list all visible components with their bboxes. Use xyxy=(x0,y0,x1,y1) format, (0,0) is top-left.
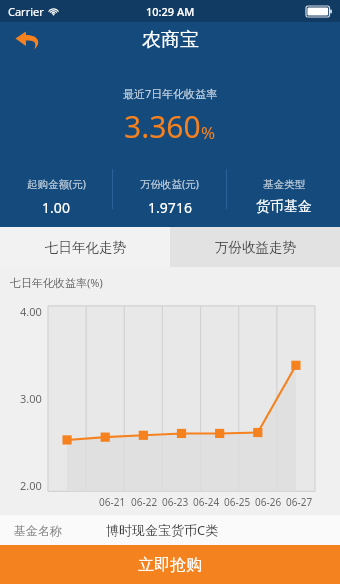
staticText: 七日年化走势 xyxy=(45,239,126,256)
staticText: 06-23 xyxy=(162,495,189,509)
button[interactable]: 万份收益走势 xyxy=(170,227,340,267)
staticText: 万份收益(元) xyxy=(140,177,199,191)
staticText: 最近7日年化收益率 xyxy=(123,86,218,101)
button[interactable]: 立即抢购 xyxy=(0,545,340,584)
staticText: 七日年化收益率(%) xyxy=(10,275,103,290)
staticText: 博时现金宝货币C类 xyxy=(106,521,219,539)
button[interactable]: Back xyxy=(8,24,48,56)
staticText: 06-27 xyxy=(286,495,313,509)
staticText: 06-26 xyxy=(255,495,282,509)
staticText: 1.00 xyxy=(42,198,70,217)
button[interactable]: 七日年化走势 xyxy=(0,227,170,267)
staticText: 3.00 xyxy=(20,391,42,406)
staticText: 06-25 xyxy=(224,495,251,509)
staticText: Carrier xyxy=(8,4,44,19)
staticText: 3.360 xyxy=(124,106,201,147)
staticText: 06-24 xyxy=(193,495,220,509)
staticText: 货币基金 xyxy=(256,198,312,216)
staticText: 10:29 AM xyxy=(146,4,195,19)
staticText: 基金名称 xyxy=(14,523,62,538)
staticText: 立即抢购 xyxy=(138,555,202,575)
staticText: 06-22 xyxy=(131,495,158,509)
staticText: 2.00 xyxy=(20,478,42,493)
staticText: 万份收益走势 xyxy=(215,239,296,256)
staticText: 06-21 xyxy=(99,495,126,509)
staticText: % xyxy=(201,121,216,144)
button[interactable]: 基金名称 xyxy=(0,515,340,545)
staticText: 基金类型 xyxy=(263,178,305,191)
staticText: 起购金额(元) xyxy=(27,177,86,191)
staticText: 农商宝 xyxy=(142,28,199,52)
staticText: 1.9716 xyxy=(148,198,192,217)
staticText: 4.00 xyxy=(20,304,42,319)
